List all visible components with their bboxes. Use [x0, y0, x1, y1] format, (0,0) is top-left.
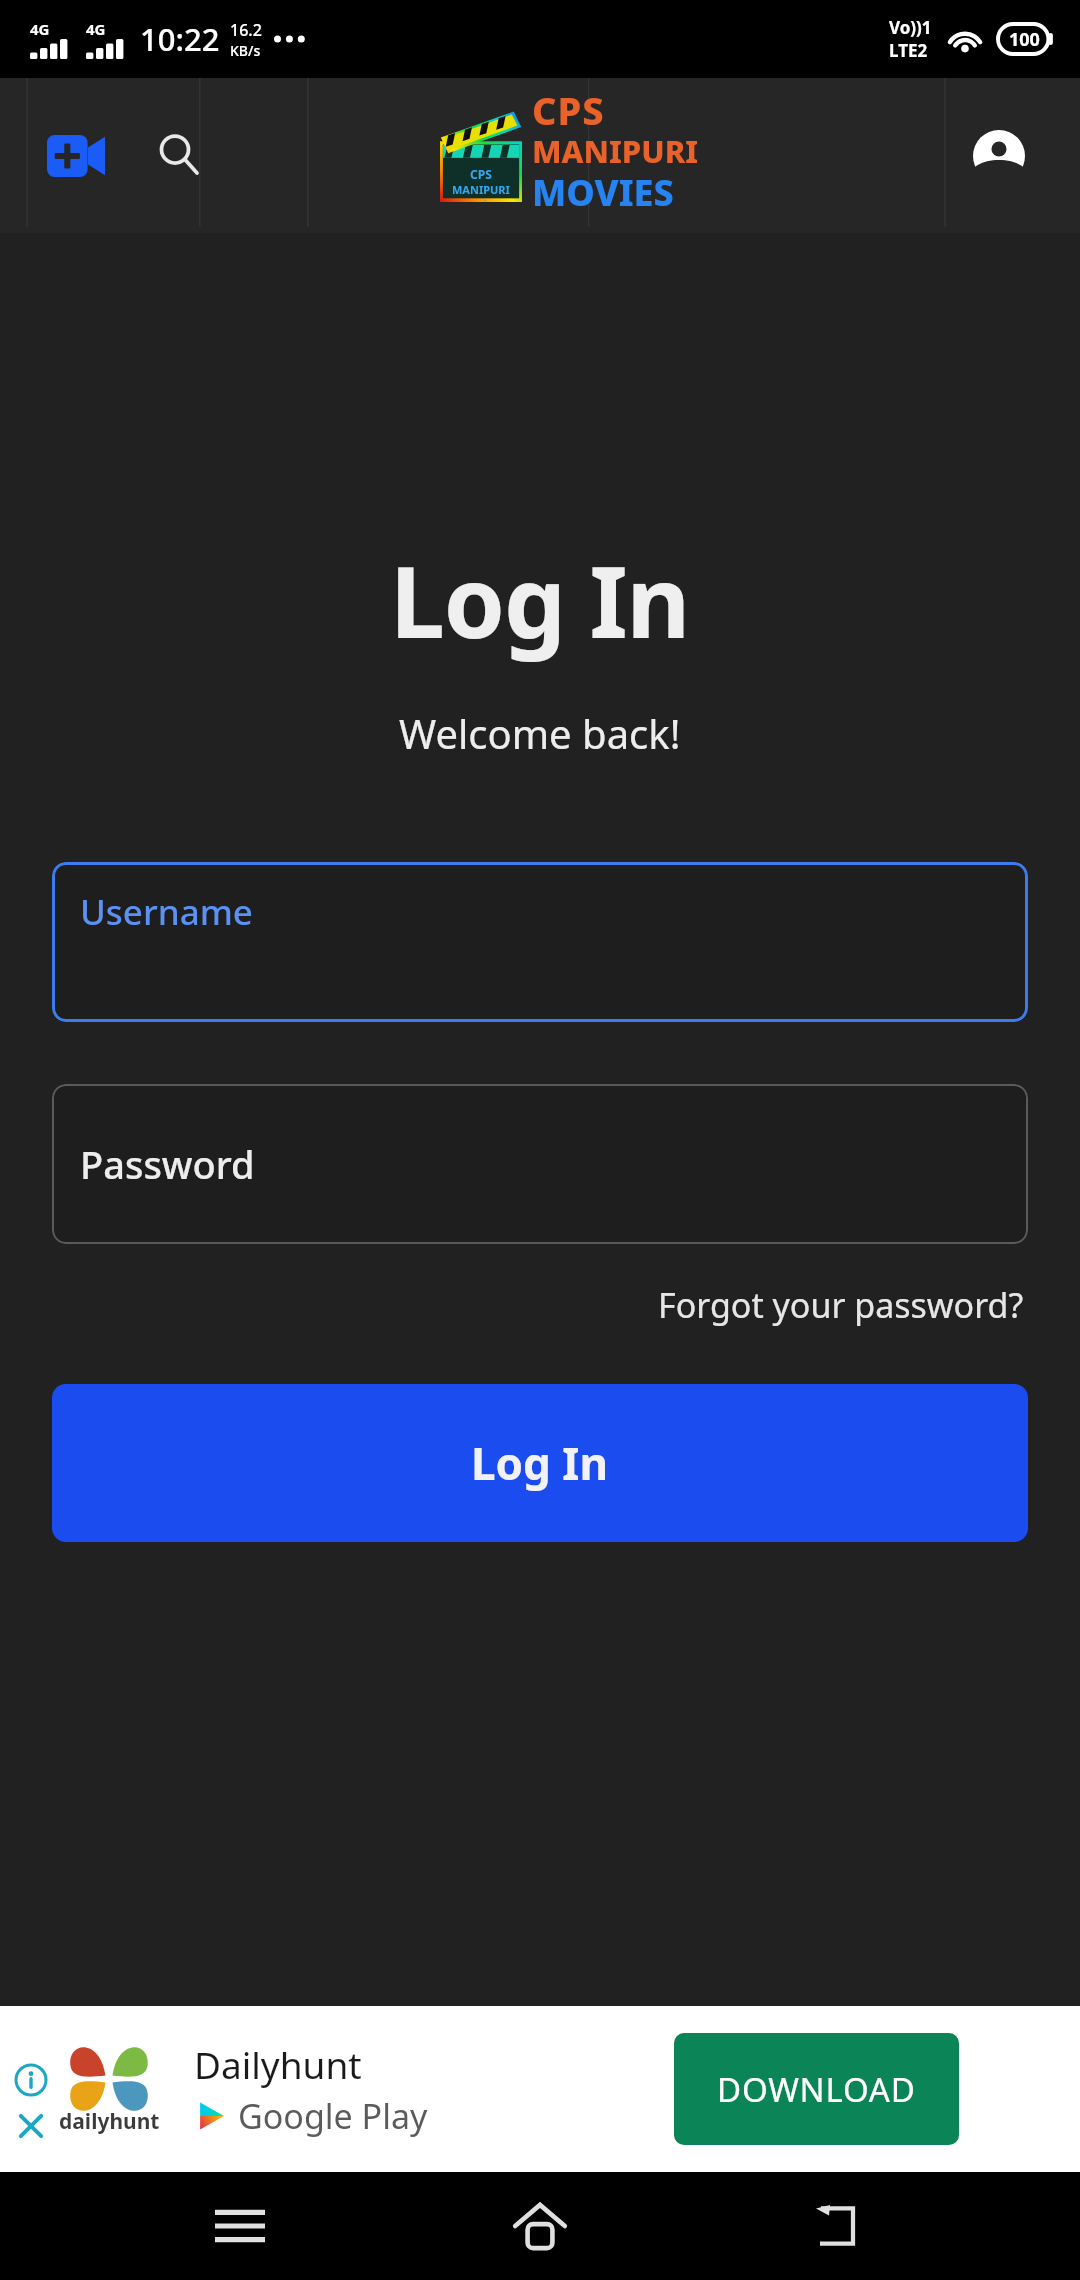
staticText: MANIPURI: [532, 130, 699, 172]
staticText: 16.2: [230, 19, 262, 41]
button[interactable]: dailyhunt: [48, 2028, 428, 2150]
staticText: Movies: [465, 197, 497, 202]
staticText: Password: [80, 1138, 255, 1190]
staticText: MOVIES: [532, 168, 674, 217]
staticText: DOWNLOAD: [717, 2067, 916, 2112]
button[interactable]: Log In: [52, 1384, 1028, 1542]
button[interactable]: Password: [52, 1084, 1028, 1244]
staticText: Vo))1: [889, 16, 932, 39]
button[interactable]: Account: [962, 119, 1036, 193]
staticText: Dailyhunt: [194, 2039, 362, 2089]
staticText: 4G: [30, 19, 50, 39]
staticText: dailyhunt: [59, 2107, 160, 2136]
button[interactable]: Search: [144, 120, 216, 192]
button[interactable]: Ad info: [8, 2057, 54, 2103]
button[interactable]: DOWNLOAD: [674, 2033, 959, 2145]
staticText: 10:22: [140, 18, 220, 60]
staticText: Forgot your password?: [658, 1282, 1024, 1328]
staticText: Google Play: [238, 2093, 428, 2139]
staticText: MANIPURI: [452, 182, 510, 197]
staticText: Welcome back!: [399, 706, 681, 760]
staticText: 100: [1009, 27, 1040, 52]
staticText: Username: [80, 888, 253, 936]
staticText: LTE2: [889, 39, 928, 62]
staticText: KB/s: [230, 41, 261, 60]
button[interactable]: Home: [480, 2172, 600, 2280]
button[interactable]: Recents: [180, 2172, 300, 2280]
button[interactable]: Forgot your password?: [654, 1278, 1028, 1332]
button[interactable]: Add video: [38, 118, 114, 194]
staticText: Log In: [390, 533, 690, 666]
staticText: 4G: [86, 19, 106, 39]
staticText: Log In: [471, 1433, 609, 1493]
staticText: CPS: [532, 84, 605, 136]
staticText: CPS: [470, 166, 492, 182]
button[interactable]: Close ad: [8, 2103, 54, 2149]
button[interactable]: Back: [780, 2172, 900, 2280]
button[interactable]: Username: [52, 862, 1028, 1022]
